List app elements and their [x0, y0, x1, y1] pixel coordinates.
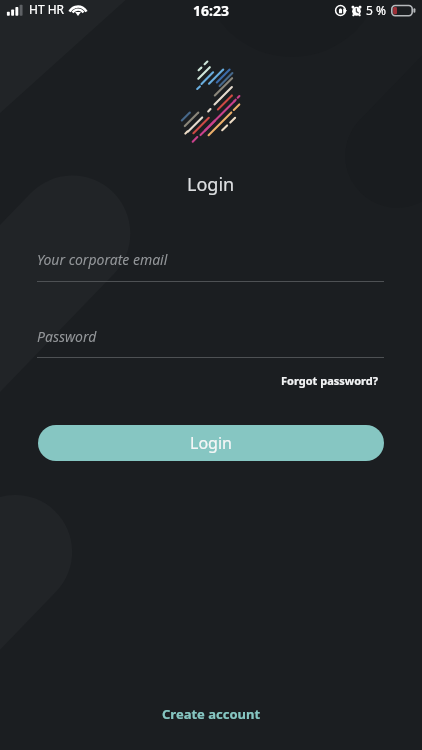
- staticText: 5 %: [366, 2, 386, 18]
- staticText: Password: [37, 327, 97, 346]
- staticText: HT HR: [29, 1, 65, 17]
- staticText: Login: [190, 432, 232, 454]
- staticText: Create account: [162, 705, 261, 723]
- button[interactable]: Login: [38, 425, 384, 461]
- staticText: Your corporate email: [37, 250, 168, 269]
- button[interactable]: Forgot password?: [275, 368, 384, 393]
- staticText: Login: [187, 172, 235, 197]
- staticText: Forgot password?: [281, 373, 378, 388]
- button[interactable]: Create account: [152, 699, 271, 729]
- staticText: 16:23: [193, 1, 229, 20]
